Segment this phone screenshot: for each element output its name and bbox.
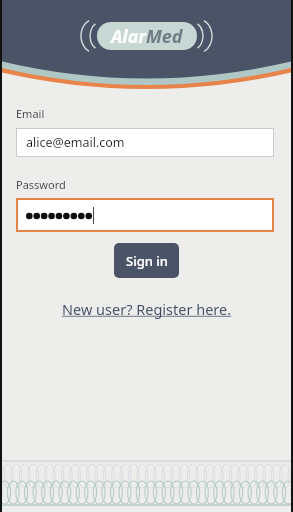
- button[interactable]: [16, 198, 274, 232]
- staticText: Med: [146, 24, 183, 49]
- staticText: Password: [16, 177, 66, 192]
- staticText: Sign in: [126, 252, 168, 270]
- staticText: Email: [16, 106, 45, 121]
- button[interactable]: New user? Register here.: [62, 299, 232, 319]
- staticText: alice@email.com: [26, 134, 125, 151]
- staticText: New user? Register here.: [62, 299, 232, 319]
- button[interactable]: alice@email.com: [16, 128, 274, 157]
- button[interactable]: Sign in: [114, 243, 179, 278]
- staticText: Alar: [111, 24, 146, 49]
